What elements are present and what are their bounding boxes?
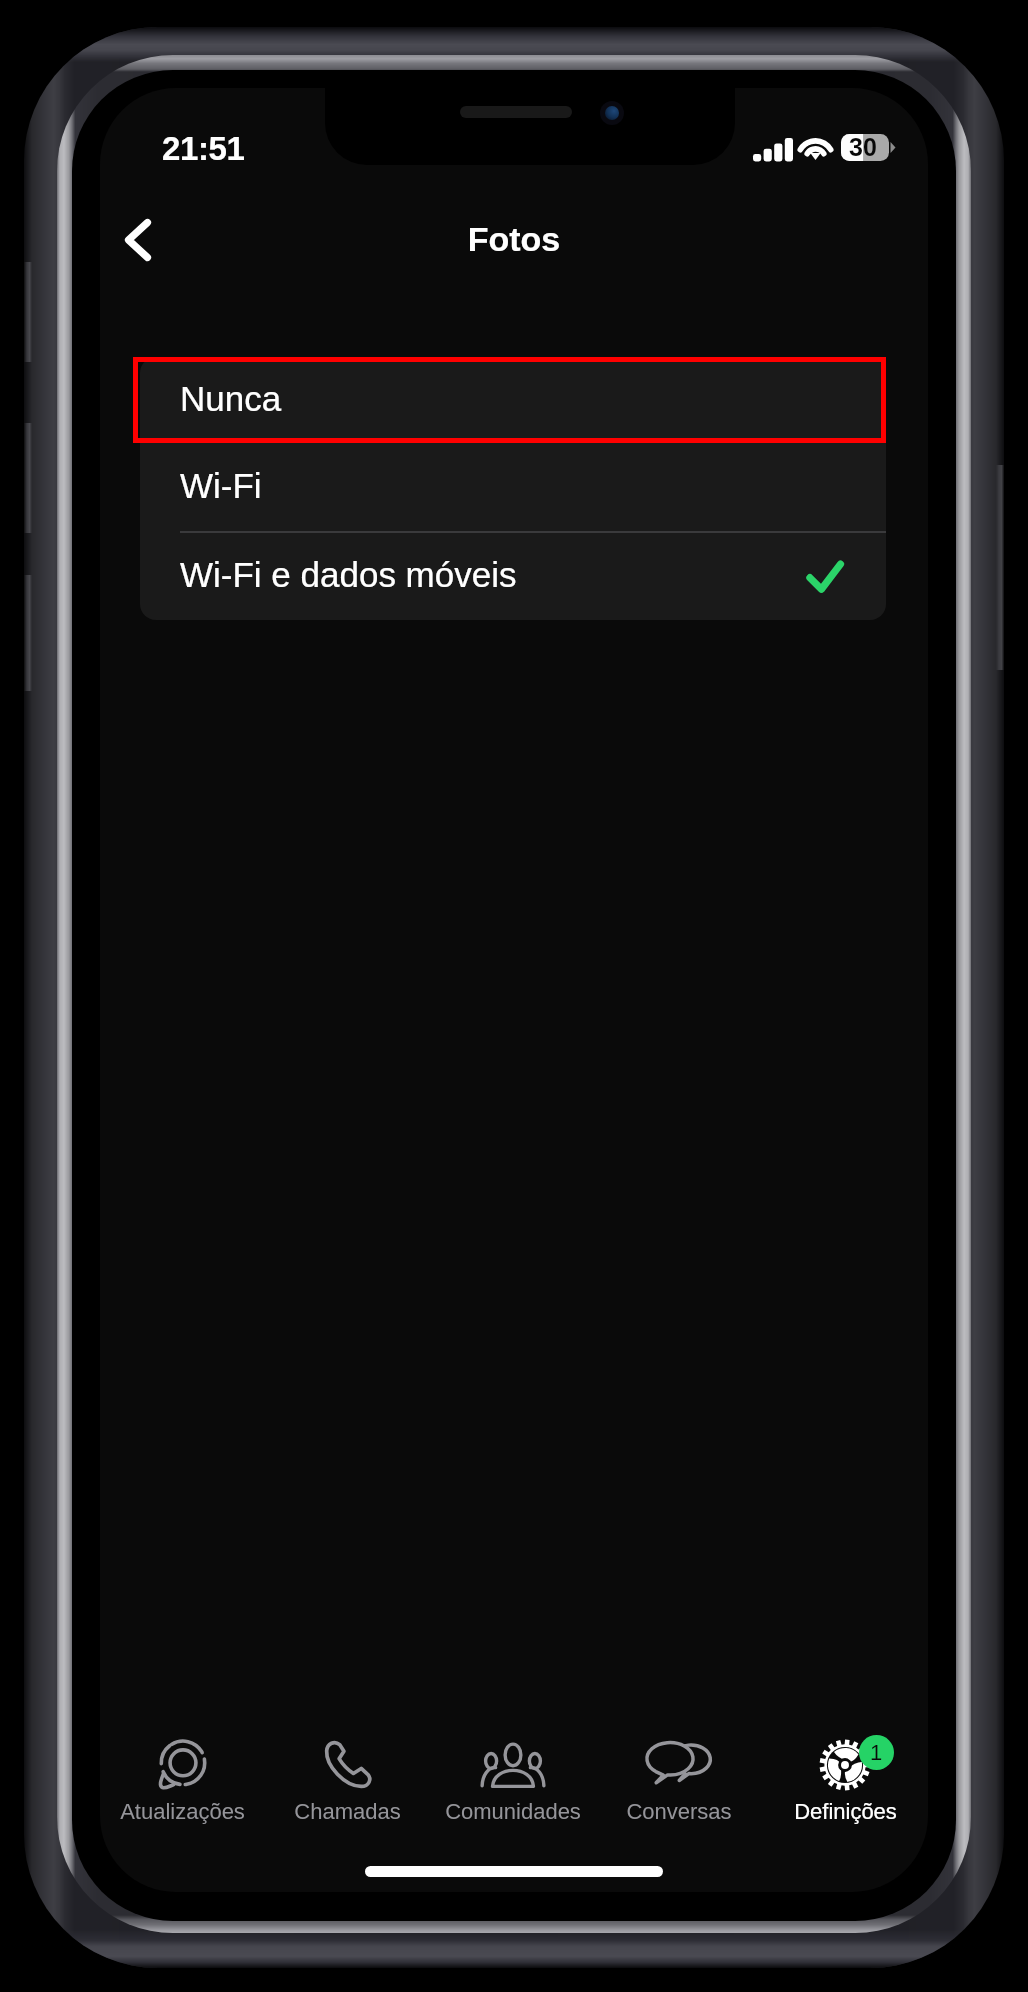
staticText: Comunidades: [445, 1799, 581, 1824]
staticText: 30: [849, 133, 877, 161]
button[interactable]: Comunidades: [430, 1732, 596, 1842]
button[interactable]: Wi-Fi: [140, 443, 886, 531]
staticText: Fotos: [100, 220, 928, 258]
staticText: Wi-Fi: [180, 466, 262, 505]
button[interactable]: Back: [108, 210, 168, 270]
button[interactable]: Atualizações: [100, 1732, 265, 1842]
button[interactable]: Conversas: [596, 1732, 762, 1842]
staticText: 1: [870, 1740, 883, 1765]
staticText: Nunca: [180, 379, 282, 418]
staticText: Conversas: [626, 1799, 732, 1824]
button[interactable]: Wi-Fi e dados móveis: [140, 533, 886, 620]
staticText: Atualizações: [120, 1799, 245, 1824]
staticText: 21:51: [162, 130, 245, 167]
staticText: Definições: [794, 1799, 897, 1824]
button[interactable]: 1: [762, 1732, 928, 1842]
staticText: Wi-Fi e dados móveis: [180, 555, 517, 594]
staticText: Chamadas: [294, 1799, 401, 1824]
button[interactable]: Nunca: [140, 357, 886, 443]
button[interactable]: Chamadas: [265, 1732, 430, 1842]
